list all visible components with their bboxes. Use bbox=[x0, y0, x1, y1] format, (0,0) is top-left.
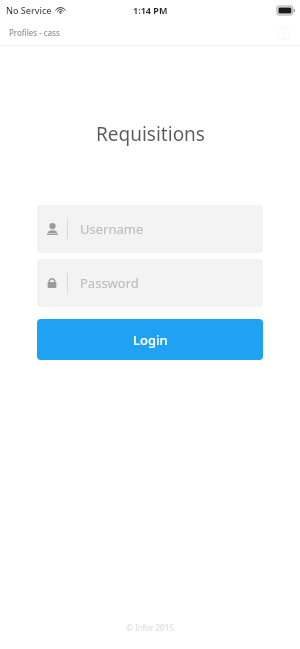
button[interactable]: Password bbox=[37, 259, 263, 307]
button[interactable]: Username bbox=[37, 205, 263, 253]
staticText: 1:14 PM bbox=[133, 4, 168, 16]
staticText: Password bbox=[80, 274, 139, 292]
button[interactable]: Login bbox=[37, 319, 263, 360]
staticText: Login bbox=[133, 331, 168, 349]
button[interactable]: Profiles - cass bbox=[0, 27, 60, 38]
staticText: Requisitions bbox=[96, 121, 205, 147]
staticText: No Service bbox=[6, 4, 52, 16]
staticText: © Infor 2015 bbox=[0, 622, 300, 633]
staticText: Username bbox=[80, 220, 144, 238]
